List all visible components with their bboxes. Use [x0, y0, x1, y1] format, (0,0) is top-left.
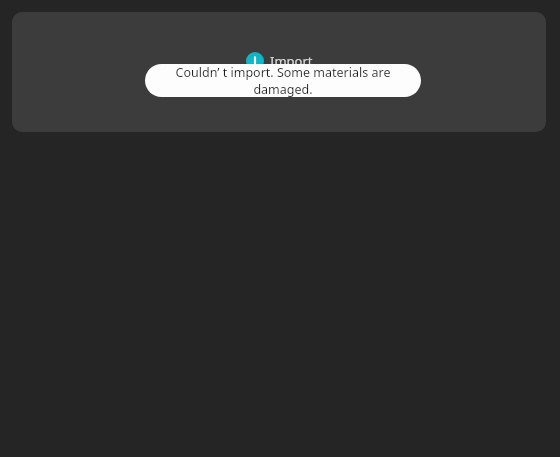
staticText: Couldn’ t import. Some materials are dam… [159, 64, 407, 97]
staticText: Some materials are damaged [196, 80, 362, 96]
other: Import status [246, 52, 264, 70]
staticText: Import [270, 52, 313, 70]
button[interactable]: Couldn’ t import. Some materials are dam… [145, 64, 421, 97]
